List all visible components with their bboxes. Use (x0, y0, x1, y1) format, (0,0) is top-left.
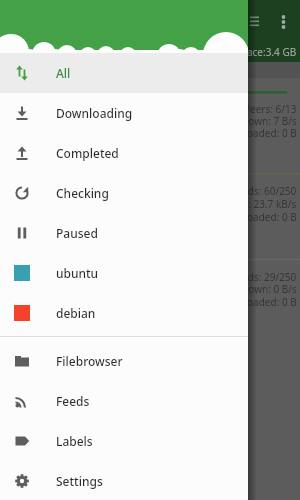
button[interactable]: Paused (0, 213, 248, 253)
staticText: Seeds: 29/250 (231, 270, 297, 283)
staticText: Labels (56, 433, 93, 449)
staticText: All (56, 65, 71, 81)
staticText: Down: 0 B/s (241, 282, 297, 295)
button[interactable]: Downloading (0, 93, 248, 133)
staticText: Downloading (56, 105, 133, 121)
staticText: Uploaded: 0 B (231, 210, 297, 223)
staticText: debian (56, 305, 96, 321)
button[interactable]: Settings (0, 461, 248, 500)
staticText: Uploaded: 0 B (231, 295, 297, 308)
button[interactable]: debian (0, 293, 248, 333)
staticText: Free space:3.4 GB (213, 45, 297, 58)
staticText: Paused (56, 225, 98, 241)
button[interactable]: Completed (0, 133, 248, 173)
staticText: Uploaded: 0 B (231, 126, 297, 139)
button[interactable]: Filebrowser (0, 341, 248, 381)
button[interactable]: Checking (0, 173, 248, 213)
staticText: Checking (56, 185, 109, 201)
staticText: Down: 23.7 kB/s (221, 197, 297, 210)
staticText: Feeds (56, 393, 90, 409)
staticText: ubuntu (56, 265, 99, 281)
button[interactable]: Labels (0, 421, 248, 461)
button[interactable]: Feeds (0, 381, 248, 421)
button[interactable]: ubuntu (0, 253, 248, 293)
button[interactable]: All (0, 53, 248, 93)
staticText: Filebrowser (56, 353, 123, 369)
staticText: Seeds: 60/250 (231, 184, 297, 197)
staticText: Settings (56, 473, 103, 489)
staticText: Peers: 6/13 (244, 102, 297, 115)
staticText: Down: 7 B/s (241, 114, 297, 127)
staticText: Completed (56, 145, 119, 161)
